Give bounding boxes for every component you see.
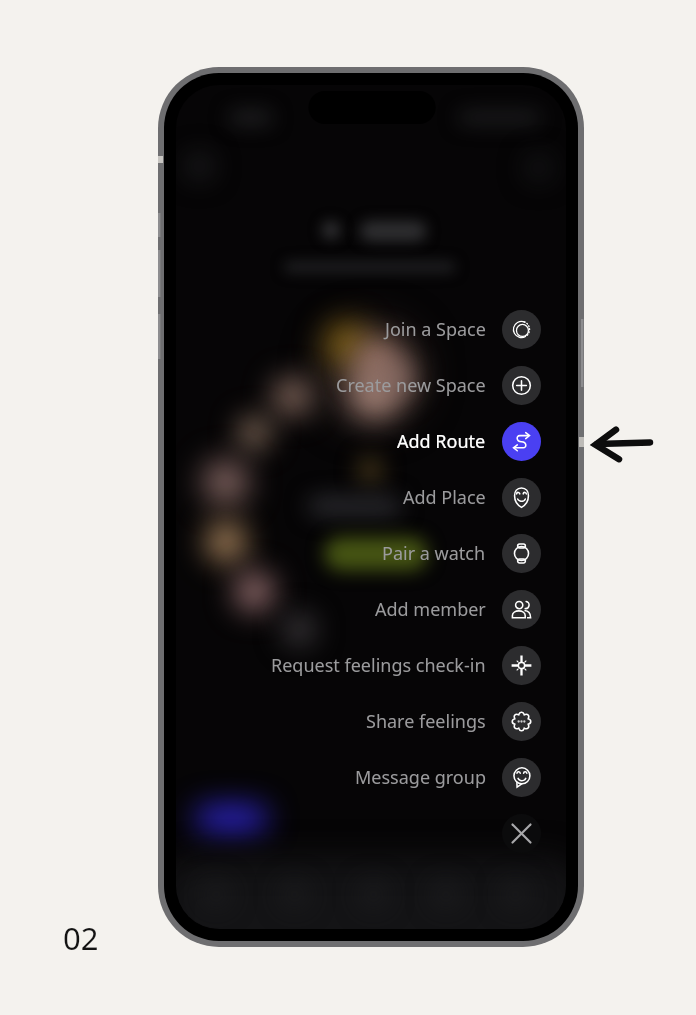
button[interactable]: Pair a watch (382, 534, 541, 573)
button[interactable]: Add Route (397, 422, 541, 461)
button[interactable]: Message group (355, 758, 541, 797)
staticText: Add member (375, 597, 486, 622)
staticText: Share feelings (366, 709, 486, 734)
button[interactable]: Request feelings check-in (271, 646, 541, 685)
button[interactable]: Join a Space (385, 310, 541, 349)
staticText: 02 (63, 917, 99, 959)
staticText: Pair a watch (382, 541, 486, 566)
staticText: Add Route (397, 429, 486, 454)
staticText: Create new Space (336, 373, 486, 398)
button[interactable]: Close menu (502, 814, 541, 853)
button[interactable]: Create new Space (336, 366, 541, 405)
staticText: Join a Space (385, 317, 486, 342)
button[interactable]: Share feelings (366, 702, 541, 741)
button[interactable]: Add Place (403, 478, 541, 517)
staticText: Add Place (403, 485, 486, 510)
button[interactable]: Add member (375, 590, 541, 629)
staticText: Request feelings check-in (271, 653, 486, 678)
staticText: Message group (355, 765, 486, 790)
